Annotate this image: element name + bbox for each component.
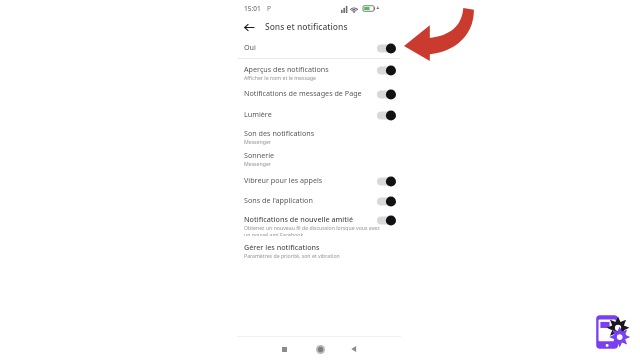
staticText: Vibreur pour les appels [244, 175, 323, 185]
staticText: Son des notifications [244, 128, 315, 138]
button[interactable]: Notifications de nouvelle amitié [237, 214, 401, 236]
button[interactable]: Lumière [237, 109, 401, 123]
staticText: Paramètres de priorité, son et vibration [244, 252, 340, 259]
staticText: Aperçus des notifications [244, 64, 329, 74]
staticText: Sonnerie [244, 150, 275, 160]
staticText: Obtenez un nouveau fil de discussion lor… [244, 224, 380, 231]
staticText: Afficher le nom et le message [244, 74, 317, 81]
button[interactable]: Lumière [377, 110, 397, 121]
staticText: Sons et notifications [265, 21, 348, 33]
button[interactable]: Vibreur pour les appels [377, 176, 397, 187]
button[interactable]: Notifications de messages de Page [377, 89, 397, 100]
button[interactable]: Retour [240, 18, 258, 36]
staticText: Notifications de messages de Page [244, 88, 362, 98]
staticText: Messenger [244, 138, 271, 145]
staticText: Notifications de nouvelle amitié [244, 214, 354, 224]
button[interactable]: Vibreur pour les appels [237, 175, 401, 189]
staticText: Messenger [244, 160, 271, 167]
staticText: Gérer les notifications [244, 242, 320, 252]
staticText: Sons de l'application [244, 195, 313, 205]
button[interactable]: Oui [237, 42, 401, 56]
button[interactable]: Oui [377, 43, 397, 54]
button[interactable]: Aperçus des notifications [237, 64, 401, 81]
staticText: Oui [244, 42, 256, 52]
button[interactable]: Sons de l'application [237, 195, 401, 209]
button[interactable]: Notifications de messages de Page [237, 88, 401, 102]
staticText: Lumière [244, 109, 272, 119]
staticText: 15:01 [244, 4, 261, 13]
button[interactable]: Sonnerie [237, 150, 401, 167]
button[interactable]: Son des notifications [237, 128, 401, 145]
staticText: P [267, 4, 271, 13]
button[interactable]: Aperçus des notifications [377, 65, 397, 76]
button[interactable]: Retour [347, 342, 361, 356]
button[interactable]: Gérer les notifications [237, 242, 401, 259]
button[interactable]: Paramètres de l'application [592, 311, 634, 353]
staticText: un nouvel ami Facebook. [244, 231, 305, 236]
button[interactable]: Notifications de nouvelle amitié [377, 215, 397, 226]
button[interactable]: Accueil [312, 341, 328, 357]
button[interactable]: Applications récentes [277, 342, 291, 356]
button[interactable]: Sons de l'application [377, 196, 397, 207]
